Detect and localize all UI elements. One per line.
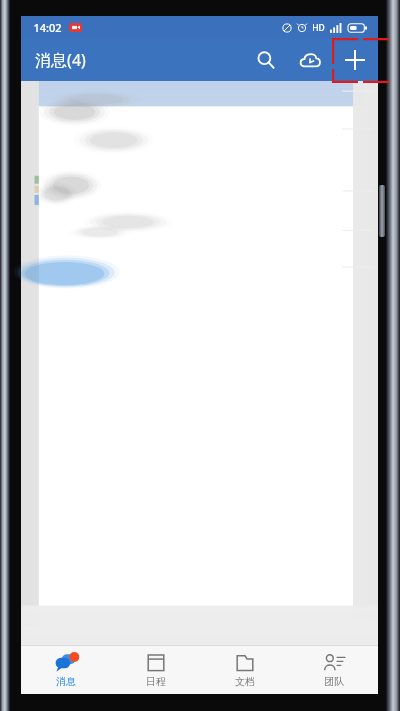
button[interactable]: 文档: [200, 646, 289, 694]
staticText: 文档: [235, 675, 255, 688]
staticText: 日程: [146, 675, 166, 688]
button[interactable]: Cloud: [288, 39, 332, 81]
button[interactable]: 消息: [21, 646, 111, 694]
staticText: HD: [312, 22, 325, 34]
button[interactable]: Search: [244, 39, 288, 81]
staticText: 消息: [56, 675, 76, 688]
button[interactable]: Add: [332, 39, 378, 81]
staticText: 消息(4): [35, 49, 86, 71]
staticText: 14:02: [33, 20, 62, 35]
button[interactable]: 日程: [111, 646, 200, 694]
staticText: 团队: [324, 675, 344, 688]
button[interactable]: 消息(4): [31, 45, 90, 75]
button[interactable]: 团队: [289, 646, 378, 694]
